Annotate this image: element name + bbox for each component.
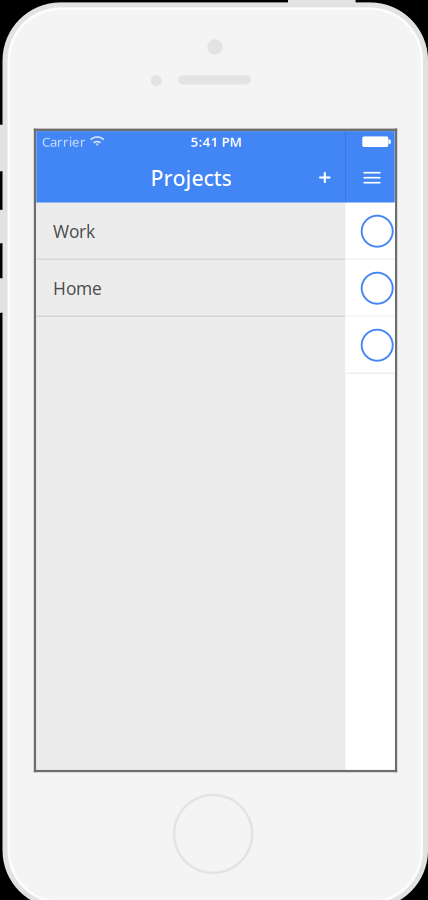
staticText: Home <box>53 277 102 300</box>
button[interactable]: Project colour <box>345 260 395 317</box>
button[interactable]: Menu <box>347 153 397 203</box>
staticText: Work <box>53 220 95 243</box>
button[interactable]: Projects <box>101 153 281 203</box>
button[interactable]: Work <box>36 203 345 260</box>
button[interactable]: Project colour <box>345 203 395 260</box>
button[interactable]: Home <box>36 260 345 317</box>
staticText: Projects <box>150 163 231 192</box>
staticText: Carrier <box>42 133 86 150</box>
button[interactable]: Add project <box>303 152 347 202</box>
staticText: 5:41 PM <box>190 133 241 150</box>
button[interactable]: Project colour <box>345 317 395 374</box>
